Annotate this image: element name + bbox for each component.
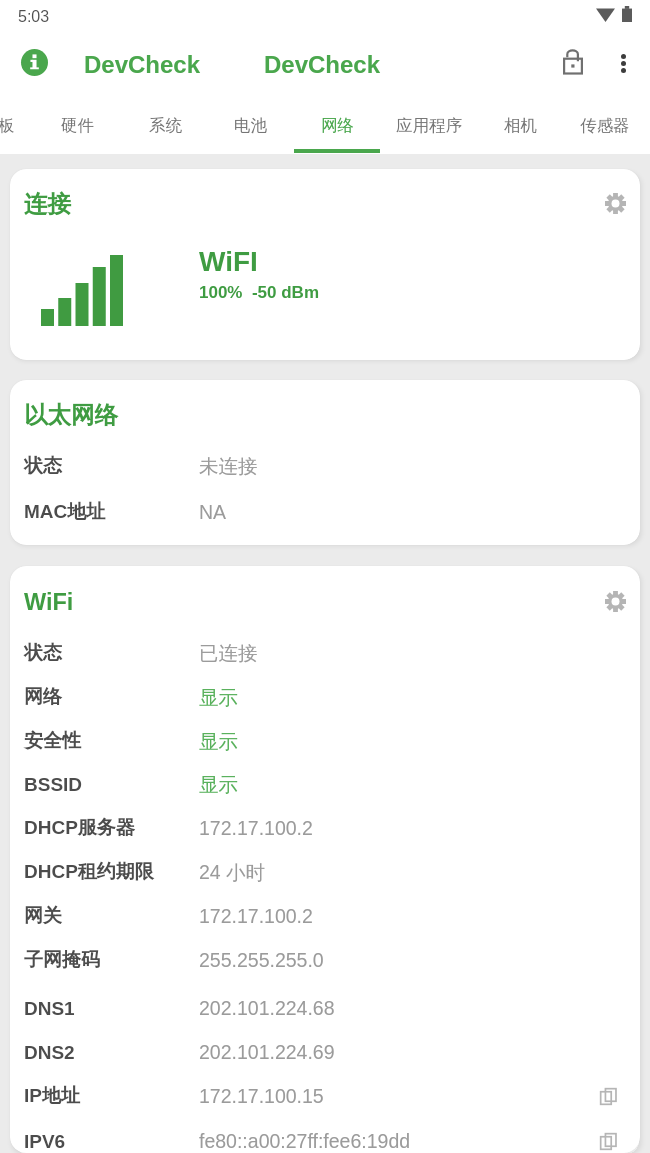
staticText: 状态 bbox=[24, 641, 62, 665]
button[interactable]: Copy bbox=[588, 1121, 628, 1153]
button[interactable]: 电池 bbox=[204, 98, 296, 154]
button[interactable]: Settings bbox=[595, 581, 635, 621]
staticText: DHCP租约期限 bbox=[24, 860, 154, 884]
staticText: 255.255.255.0 bbox=[199, 949, 324, 971]
staticText: DevCheck bbox=[264, 51, 381, 78]
staticText: 网络 bbox=[321, 115, 354, 136]
staticText: 系统 bbox=[149, 115, 182, 136]
staticText: BSSID bbox=[24, 774, 83, 795]
staticText: 子网掩码 bbox=[24, 948, 100, 972]
staticText: 172.17.100.2 bbox=[199, 817, 313, 839]
staticText: 202.101.224.69 bbox=[199, 1041, 335, 1063]
staticText: 连接 bbox=[24, 189, 71, 219]
staticText: WiFi bbox=[24, 589, 74, 615]
button[interactable]: 传感器 bbox=[559, 98, 650, 154]
staticText: DHCP服务器 bbox=[24, 816, 135, 840]
staticText: 已连接 bbox=[199, 641, 258, 666]
staticText: DevCheck bbox=[84, 51, 201, 78]
staticText: 24 小时 bbox=[199, 860, 266, 885]
button[interactable]: 网关 bbox=[10, 894, 640, 938]
staticText: 应用程序 bbox=[396, 115, 462, 136]
staticText: 100% -50 dBm bbox=[199, 283, 319, 302]
button[interactable]: MAC地址 bbox=[10, 490, 640, 534]
staticText: 显示 bbox=[199, 729, 238, 754]
staticText: IP地址 bbox=[24, 1084, 80, 1108]
staticText: 202.101.224.68 bbox=[199, 997, 335, 1019]
button[interactable]: 系统 bbox=[119, 98, 211, 154]
staticText: 以太网络 bbox=[24, 400, 118, 430]
staticText: 状态 bbox=[24, 454, 62, 478]
button[interactable]: 硬件 bbox=[31, 98, 123, 154]
button[interactable]: Unlock bbox=[551, 39, 595, 83]
staticText: NA bbox=[199, 501, 227, 523]
button[interactable]: IPV6 bbox=[10, 1119, 640, 1153]
staticText: 显示 bbox=[199, 772, 238, 797]
staticText: 电池 bbox=[234, 115, 267, 136]
button[interactable]: 网络 bbox=[10, 675, 640, 719]
button[interactable]: 板 bbox=[0, 98, 52, 154]
button[interactable]: 应用程序 bbox=[383, 98, 475, 154]
staticText: WiFI bbox=[199, 246, 258, 277]
button[interactable]: 状态 bbox=[10, 631, 640, 675]
button[interactable]: 状态 bbox=[10, 444, 640, 488]
staticText: 网络 bbox=[24, 685, 62, 709]
button[interactable]: 安全性 bbox=[10, 719, 640, 763]
staticText: 显示 bbox=[199, 685, 238, 710]
button[interactable]: 相机 bbox=[474, 98, 566, 154]
staticText: 传感器 bbox=[580, 115, 630, 136]
staticText: 安全性 bbox=[24, 729, 81, 753]
staticText: 172.17.100.2 bbox=[199, 905, 313, 927]
button[interactable]: IP地址 bbox=[10, 1074, 640, 1118]
button[interactable]: 子网掩码 bbox=[10, 938, 640, 982]
staticText: 硬件 bbox=[61, 115, 94, 136]
staticText: 网关 bbox=[24, 904, 62, 928]
staticText: DNS1 bbox=[24, 998, 75, 1019]
button[interactable]: DHCP租约期限 bbox=[10, 850, 640, 894]
button[interactable]: App info bbox=[14, 42, 54, 82]
staticText: 未连接 bbox=[199, 454, 258, 479]
button[interactable]: Settings bbox=[595, 183, 635, 223]
button[interactable]: DHCP服务器 bbox=[10, 806, 640, 850]
button[interactable]: DNS2 bbox=[10, 1030, 640, 1074]
staticText: DNS2 bbox=[24, 1042, 75, 1063]
button[interactable]: 网络 bbox=[291, 98, 383, 154]
staticText: 相机 bbox=[504, 115, 537, 136]
button[interactable]: BSSID bbox=[10, 762, 640, 806]
staticText: 板 bbox=[0, 115, 15, 136]
button[interactable]: Copy bbox=[588, 1076, 628, 1116]
button[interactable]: More options bbox=[601, 41, 645, 85]
staticText: IPV6 bbox=[24, 1131, 66, 1152]
staticText: MAC地址 bbox=[24, 500, 106, 524]
staticText: 5:03 bbox=[18, 8, 50, 26]
staticText: 172.17.100.15 bbox=[199, 1085, 324, 1107]
staticText: fe80::a00:27ff:fee6:19dd bbox=[199, 1130, 411, 1152]
button[interactable]: DNS1 bbox=[10, 986, 640, 1030]
